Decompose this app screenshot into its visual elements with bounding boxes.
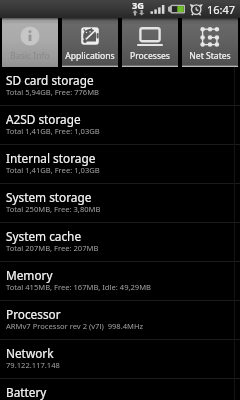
staticText: Total 207MB, Free: 207MB	[6, 243, 99, 253]
staticText: Total 415MB, Free: 167MB, Idle: 49,29MB	[6, 282, 152, 292]
staticText: Total 250MB, Free: 3,80MB	[6, 204, 101, 214]
button[interactable]: System storage	[0, 184, 240, 222]
button[interactable]: Processor	[0, 301, 240, 339]
button[interactable]: Net States	[182, 18, 238, 67]
button[interactable]: A2SD storage	[0, 106, 240, 144]
staticText: 79.122.117.148	[6, 360, 60, 370]
staticText: 3G	[132, 0, 144, 12]
staticText: 16:47	[207, 2, 236, 17]
button[interactable]: Memory	[0, 262, 240, 300]
staticText: Basic Info	[10, 50, 50, 62]
staticText: Applications	[65, 50, 115, 62]
staticText: Total 5,94GB, Free: 776MB	[6, 87, 100, 97]
staticText: Total 1,41GB, Free: 1,03GB	[6, 165, 100, 175]
staticText: System storage	[6, 189, 92, 205]
staticText: Processes	[130, 50, 170, 62]
staticText: Memory	[6, 267, 53, 283]
staticText: Net States	[189, 50, 231, 62]
button[interactable]: SD card storage	[0, 67, 240, 105]
other: Basic Info	[20, 26, 40, 46]
other: Net States	[200, 26, 220, 48]
button[interactable]: System cache	[0, 223, 240, 261]
staticText: Processor	[6, 306, 61, 322]
button[interactable]: Basic Info	[2, 18, 58, 67]
staticText: Network	[6, 345, 54, 361]
button[interactable]: Network	[0, 340, 240, 378]
other: Applications	[80, 26, 100, 46]
button[interactable]: Applications	[62, 18, 118, 67]
button[interactable]: Battery	[0, 379, 240, 400]
button[interactable]: Internal storage	[0, 145, 240, 183]
staticText: Battery	[6, 384, 47, 400]
staticText: System cache	[6, 228, 82, 244]
staticText: A2SD storage	[6, 111, 81, 127]
staticText: SD card storage	[6, 72, 94, 88]
staticText: ARMv7 Processor rev 2 (v7l) 998.4MHz	[6, 321, 144, 331]
other: Processes	[137, 26, 163, 46]
button[interactable]: Processes	[122, 18, 178, 67]
staticText: Internal storage	[6, 150, 96, 166]
staticText: Total 1,41GB, Free: 1,03GB	[6, 126, 100, 136]
